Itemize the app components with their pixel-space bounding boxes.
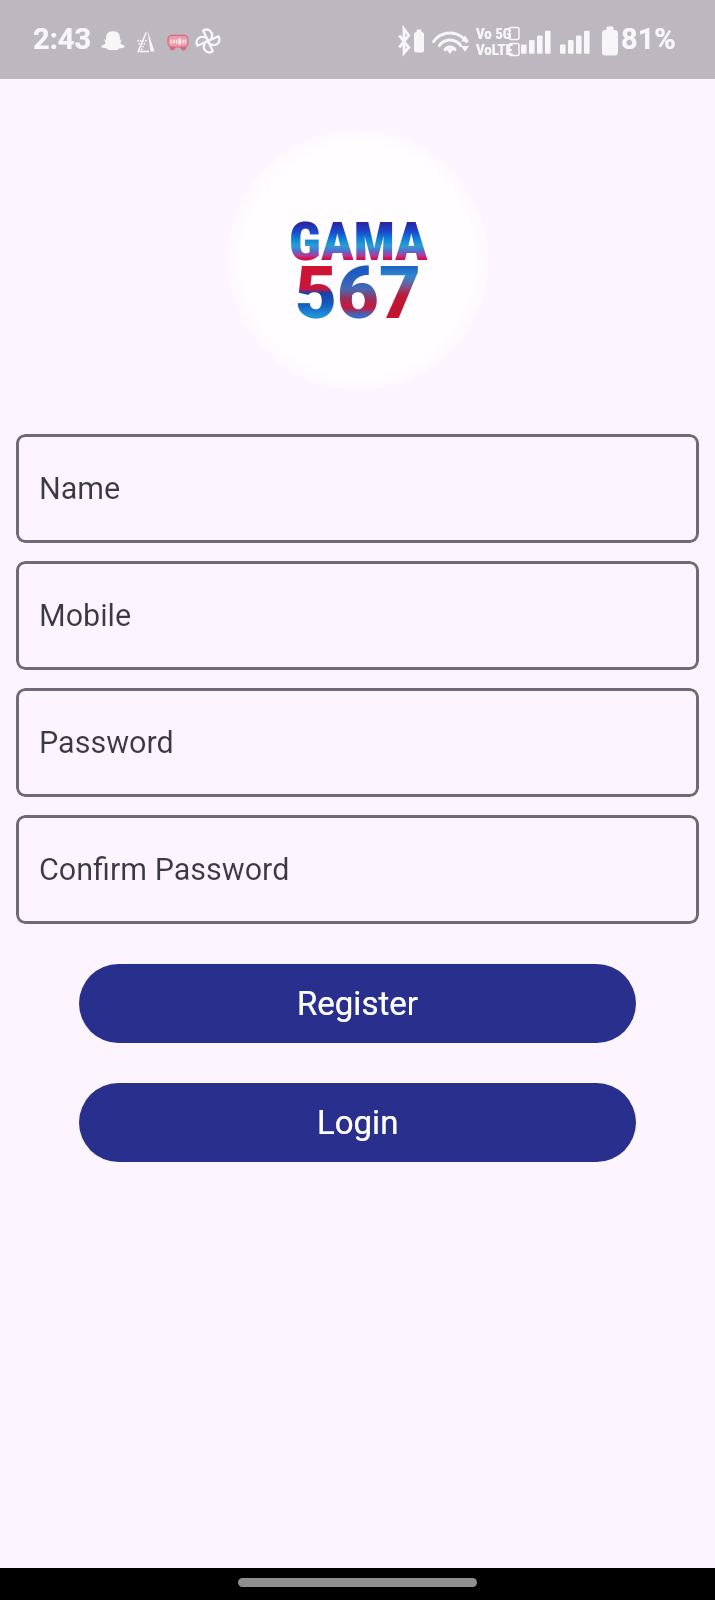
staticText: 5: [295, 251, 337, 335]
staticText: Mobile: [39, 598, 132, 634]
button[interactable]: Register: [79, 964, 636, 1043]
staticText: Register: [297, 984, 418, 1023]
staticText: Confirm Password: [39, 852, 290, 888]
button[interactable]: Home: [238, 1578, 477, 1587]
button[interactable]: Password: [16, 688, 699, 797]
staticText: 2:43: [33, 22, 92, 56]
staticText: 6: [337, 251, 379, 335]
button[interactable]: Confirm Password: [16, 815, 699, 924]
button[interactable]: Mobile: [16, 561, 699, 670]
staticText: Vo 5G: [476, 25, 512, 43]
button[interactable]: Login: [79, 1083, 636, 1162]
staticText: 7: [379, 251, 421, 335]
staticText: VoLTE: [476, 41, 513, 59]
button[interactable]: Name: [16, 434, 699, 543]
staticText: GAMA: [289, 210, 428, 273]
staticText: 81%: [621, 22, 676, 56]
staticText: Name: [39, 471, 121, 507]
staticText: Password: [39, 725, 174, 761]
staticText: Login: [317, 1103, 399, 1142]
